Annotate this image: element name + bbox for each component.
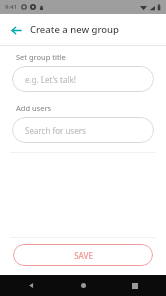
- staticText: e.g. Let's talk!: [25, 74, 76, 85]
- button[interactable]: Search for users: [12, 117, 154, 143]
- button[interactable]: e.g. Let's talk!: [12, 66, 154, 92]
- button[interactable]: SAVE: [13, 244, 153, 266]
- staticText: 9:41: [5, 3, 17, 11]
- button[interactable]: Back: [20, 275, 42, 296]
- button[interactable]: Home: [72, 275, 94, 296]
- staticText: Search for users: [25, 125, 86, 136]
- staticText: SAVE: [74, 250, 93, 261]
- button[interactable]: Recents: [124, 275, 146, 296]
- staticText: Create a new group: [30, 23, 119, 36]
- button[interactable]: Back: [6, 20, 26, 40]
- staticText: Add users: [16, 103, 52, 113]
- staticText: Set group title: [16, 52, 66, 62]
